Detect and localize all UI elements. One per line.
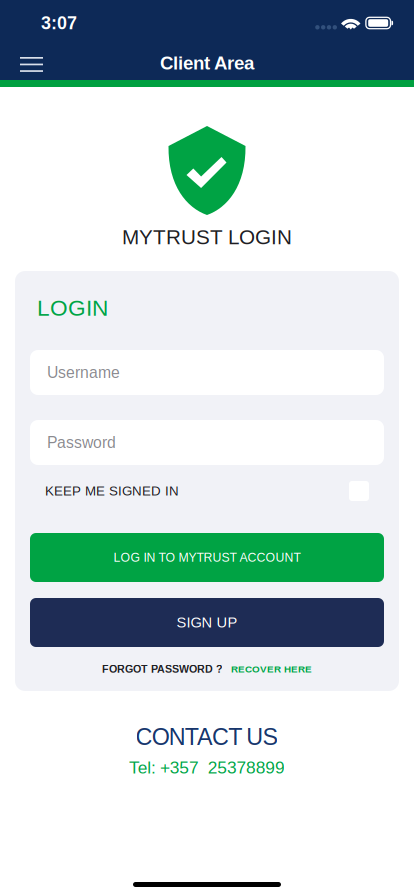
staticText: 3:07 [41,13,77,33]
staticText: Password [47,434,116,451]
staticText: Username [47,364,120,381]
button[interactable]: KEEP ME SIGNED IN [30,481,384,501]
button[interactable]: Menu [0,46,61,80]
staticText: RECOVER HERE [231,663,312,674]
staticText: FORGOT PASSWORD ? [102,663,223,675]
staticText: LOGIN [37,295,108,321]
staticText: MYTRUST LOGIN [122,225,292,249]
staticText: Client Area [160,53,254,73]
staticText: Tel: +357 25378899 [129,758,285,777]
button[interactable]: SIGN UP [30,598,384,647]
button[interactable]: Username [30,350,384,395]
staticText: KEEP ME SIGNED IN [45,484,179,498]
staticText: CONTACT US [136,724,278,750]
button[interactable]: Password [30,420,384,465]
button[interactable]: RECOVER HERE [231,663,312,674]
staticText: SIGN UP [176,614,237,631]
button[interactable]: LOG IN TO MYTRUST ACCOUNT [30,533,384,582]
staticText: LOG IN TO MYTRUST ACCOUNT [113,551,300,564]
